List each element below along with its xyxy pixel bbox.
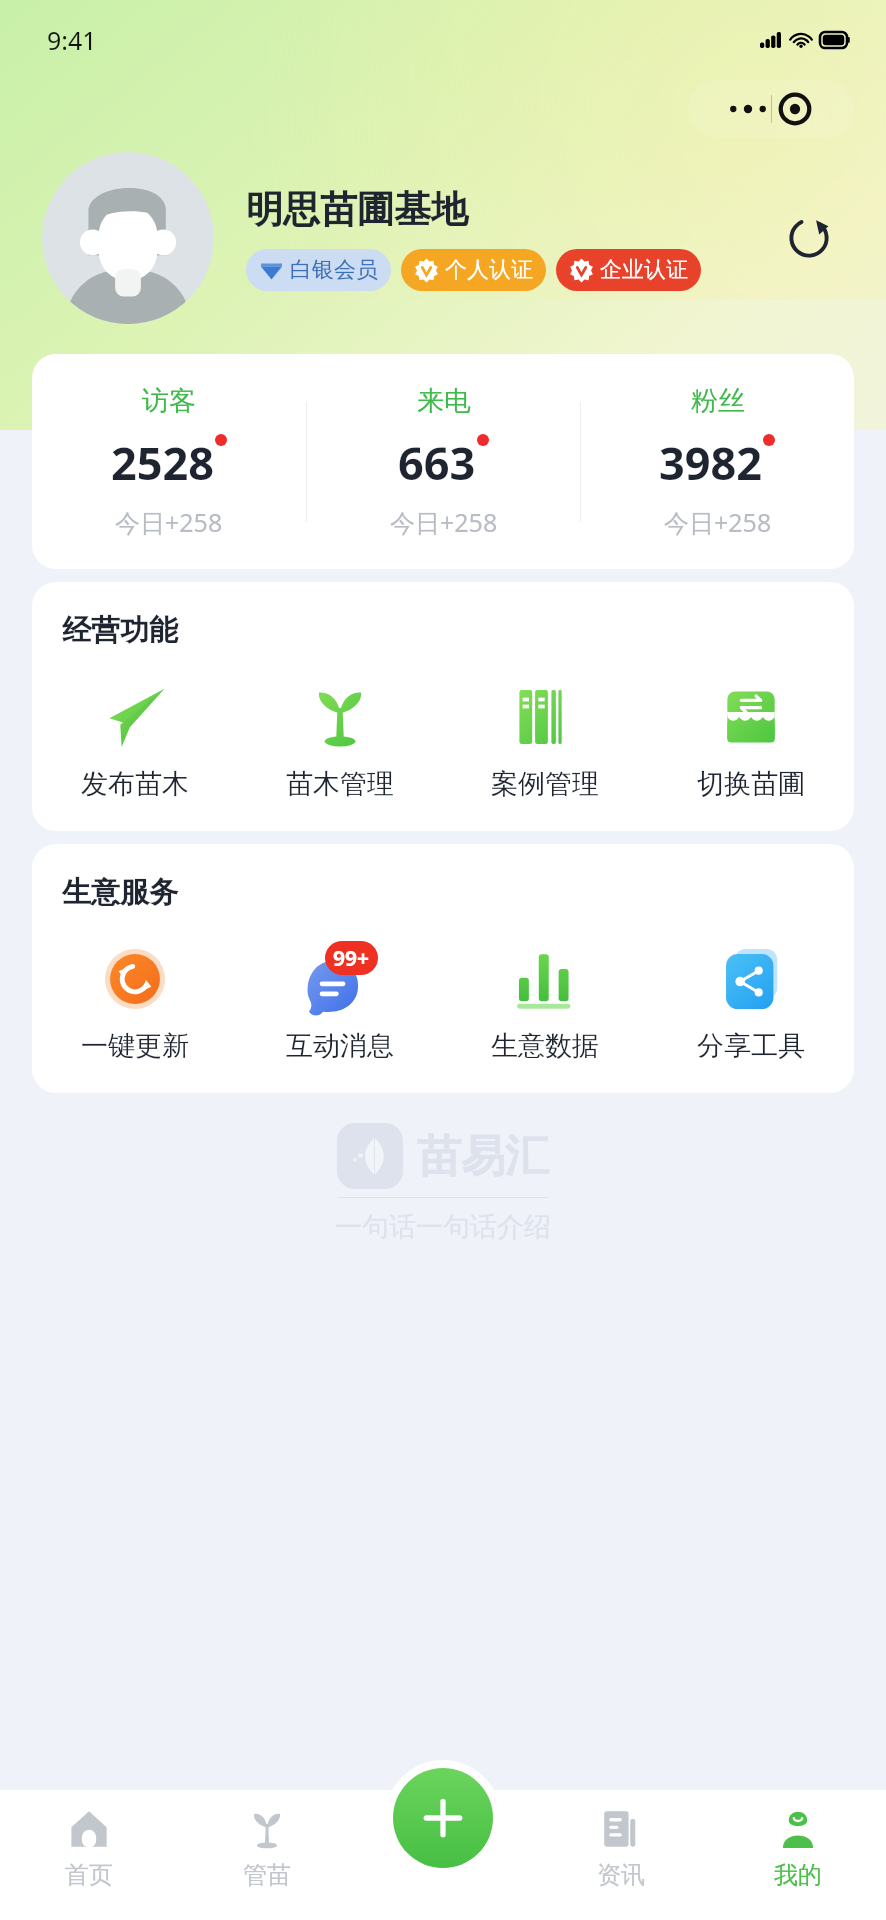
- staticText: 切换苗圃: [697, 767, 805, 801]
- staticText: 一句话一句话介绍: [335, 1210, 551, 1244]
- staticText: 663: [398, 432, 476, 493]
- staticText: 个人认证: [445, 256, 533, 284]
- staticText: 粉丝: [691, 384, 745, 418]
- button[interactable]: 我的: [709, 1790, 886, 1920]
- staticText: 2528: [111, 432, 214, 493]
- staticText: 发布苗木: [81, 767, 189, 801]
- button[interactable]: 切换苗圃: [648, 677, 854, 805]
- staticText: 白银会员: [290, 256, 378, 284]
- staticText: 案例管理: [491, 767, 599, 801]
- button[interactable]: More options: [688, 80, 854, 138]
- staticText: 互动消息: [286, 1029, 394, 1063]
- button[interactable]: 发布苗木: [32, 677, 237, 805]
- button[interactable]: 白银会员: [246, 249, 391, 291]
- staticText: 苗易汇: [417, 1129, 549, 1184]
- staticText: 苗木管理: [286, 767, 394, 801]
- button[interactable]: 生意数据: [442, 939, 648, 1067]
- staticText: 99+: [333, 944, 370, 973]
- staticText: 企业认证: [600, 256, 688, 284]
- button[interactable]: 案例管理: [442, 677, 648, 805]
- staticText: 3982: [659, 432, 762, 493]
- button[interactable]: Add: [393, 1768, 493, 1868]
- button[interactable]: 苗木管理: [237, 677, 442, 805]
- staticText: 生意数据: [491, 1029, 599, 1063]
- staticText: 生意服务: [62, 874, 178, 911]
- staticText: 一键更新: [81, 1029, 189, 1063]
- button[interactable]: 一键更新: [32, 939, 237, 1067]
- staticText: 明思苗圃基地: [246, 186, 468, 233]
- button[interactable]: 访客: [32, 384, 306, 539]
- button[interactable]: 99+: [237, 939, 442, 1067]
- staticText: 今日+258: [115, 505, 223, 539]
- button[interactable]: 企业认证: [556, 249, 701, 291]
- button[interactable]: 资讯: [532, 1790, 709, 1920]
- staticText: 今日+258: [390, 505, 498, 539]
- staticText: 访客: [142, 384, 196, 418]
- staticText: 分享工具: [697, 1029, 805, 1063]
- staticText: 首页: [65, 1860, 113, 1890]
- staticText: 来电: [417, 384, 471, 418]
- button[interactable]: 管苗: [178, 1790, 355, 1920]
- button[interactable]: Avatar: [42, 152, 214, 324]
- button[interactable]: 首页: [0, 1790, 178, 1920]
- button[interactable]: 分享工具: [648, 939, 854, 1067]
- staticText: 我的: [774, 1860, 822, 1890]
- button[interactable]: Refresh: [774, 203, 844, 273]
- staticText: 资讯: [597, 1860, 645, 1890]
- staticText: 经营功能: [62, 612, 178, 649]
- button[interactable]: 粉丝: [581, 384, 854, 539]
- staticText: 管苗: [243, 1860, 291, 1890]
- button[interactable]: 来电: [307, 384, 580, 539]
- staticText: 今日+258: [664, 505, 772, 539]
- staticText: 9:41: [47, 23, 97, 57]
- button[interactable]: 个人认证: [401, 249, 546, 291]
